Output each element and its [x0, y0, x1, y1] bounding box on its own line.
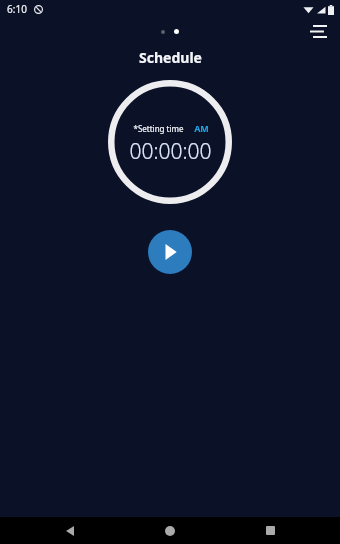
button[interactable]: Start — [148, 230, 192, 274]
button[interactable]: Menu — [302, 18, 334, 44]
button[interactable] — [161, 30, 165, 34]
staticText: AM — [194, 122, 209, 134]
button[interactable]: Set time — [108, 80, 232, 204]
staticText: 6:10 — [7, 2, 27, 16]
button[interactable]: Back — [40, 517, 100, 544]
button[interactable]: Recent apps — [240, 517, 300, 544]
staticText: *Setting time — [133, 123, 184, 134]
button[interactable] — [174, 29, 179, 34]
staticText: Schedule — [139, 48, 202, 67]
staticText: 00:00:00 — [129, 137, 212, 166]
button[interactable]: Home — [140, 517, 200, 544]
